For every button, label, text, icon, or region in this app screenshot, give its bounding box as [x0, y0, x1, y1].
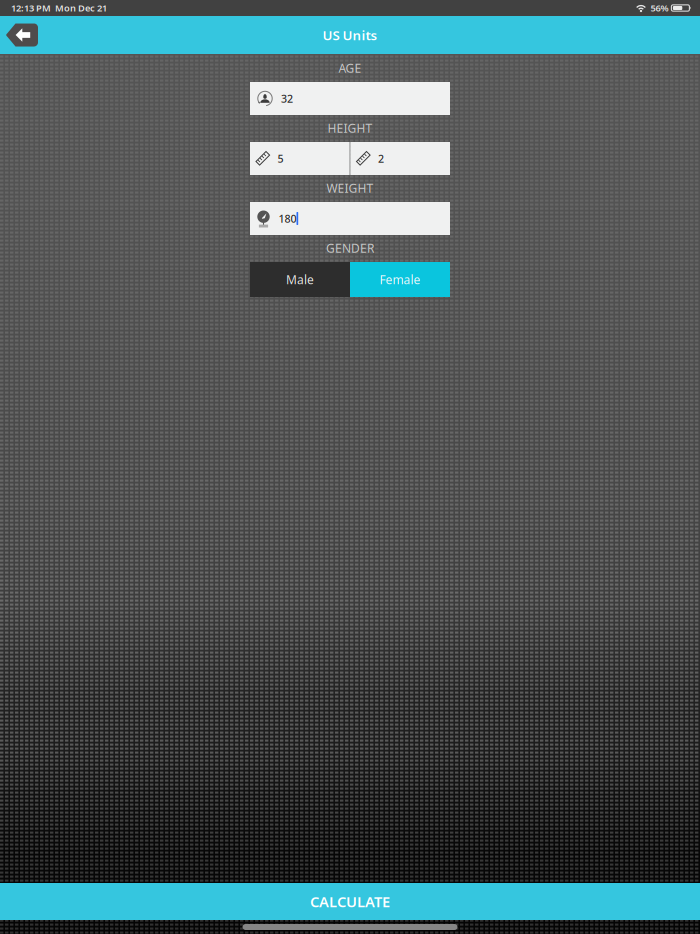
staticText: 12:13 PM: [11, 2, 51, 14]
staticText: 5: [277, 151, 283, 166]
button[interactable]: Back: [0, 23, 38, 46]
button[interactable]: Male: [250, 262, 350, 297]
staticText: Female: [379, 271, 420, 287]
staticText: CALCULATE: [310, 892, 390, 911]
staticText: AGE: [338, 60, 361, 76]
staticText: 32: [281, 91, 293, 106]
staticText: 180: [278, 211, 296, 226]
button[interactable]: CALCULATE: [0, 883, 700, 920]
staticText: WEIGHT: [326, 180, 373, 196]
staticText: US Units: [322, 26, 377, 44]
button[interactable]: Female: [350, 262, 450, 297]
staticText: Mon Dec 21: [55, 2, 107, 14]
staticText: GENDER: [326, 240, 374, 256]
staticText: HEIGHT: [327, 120, 372, 136]
staticText: 56%: [650, 2, 668, 14]
staticText: 2: [378, 151, 384, 166]
staticText: Male: [286, 271, 314, 287]
